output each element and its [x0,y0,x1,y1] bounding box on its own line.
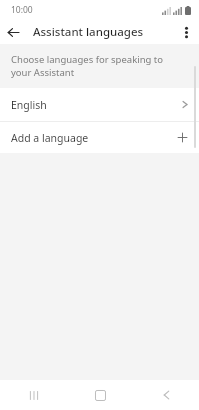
button[interactable]: Home [67,380,133,410]
button[interactable]: English [0,88,199,121]
staticText: Assistant languages [33,24,144,40]
staticText: 10:00 [11,4,33,16]
button[interactable]: More options [173,20,199,44]
button[interactable]: Back [0,20,26,44]
button[interactable]: Back [133,380,199,410]
staticText: Choose languages for speaking to your As… [11,53,177,79]
staticText: English [11,98,182,112]
button[interactable]: Add a language [0,122,199,153]
button[interactable]: Recent apps [0,380,67,410]
staticText: Add a language [11,131,177,145]
